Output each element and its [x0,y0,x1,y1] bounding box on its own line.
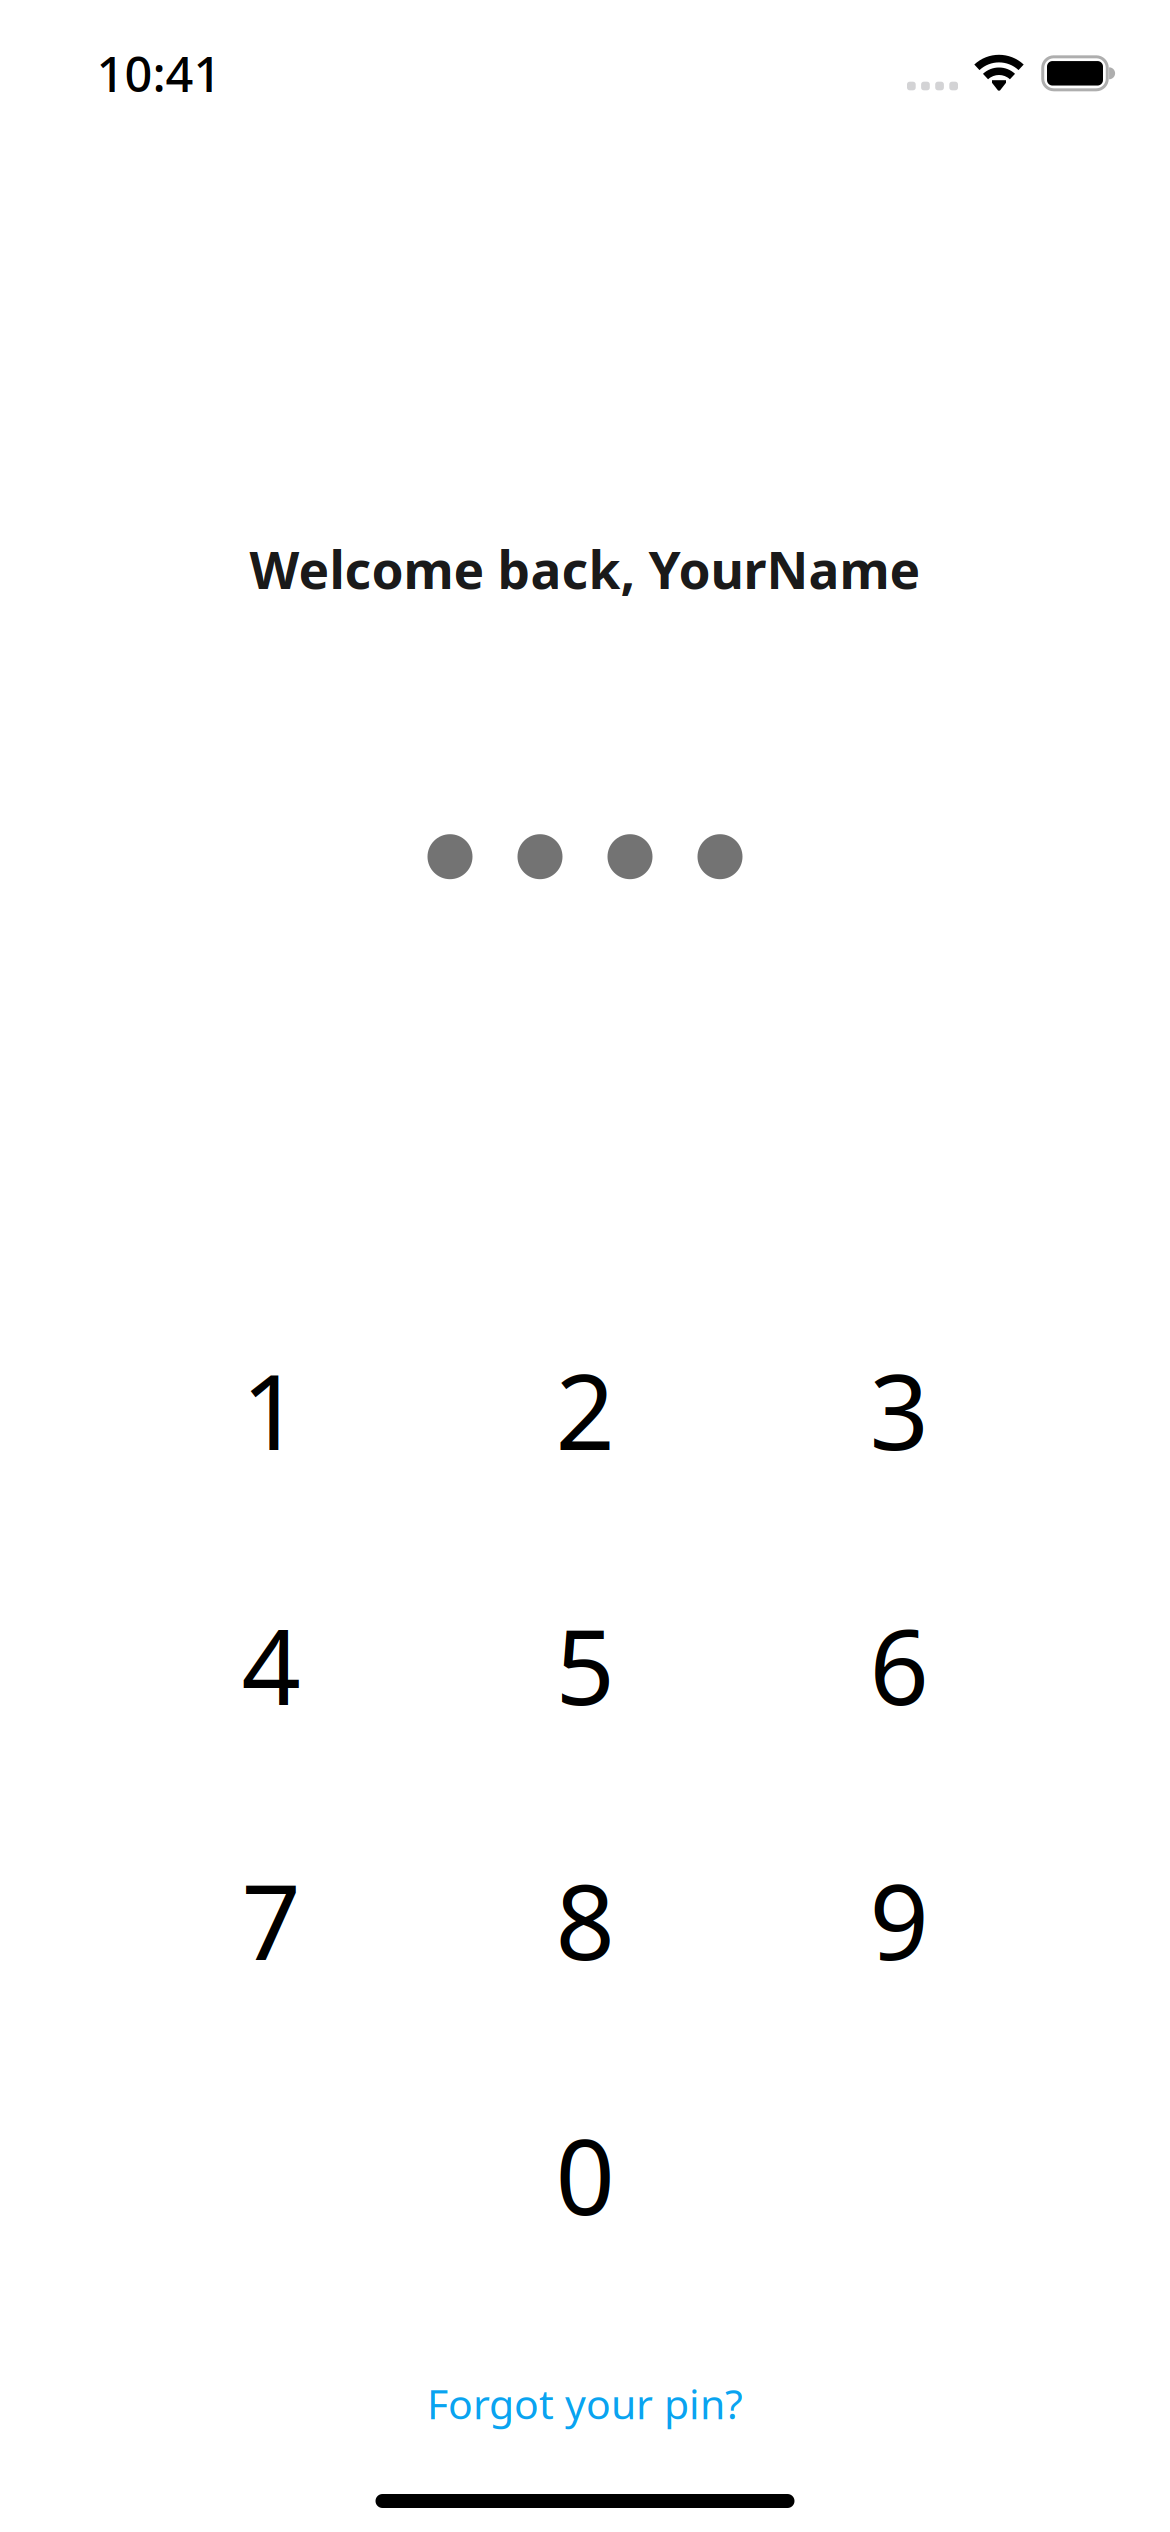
staticText: 10:41 [96,39,221,107]
button[interactable]: 9 [742,1792,1056,2047]
button[interactable]: 1 [114,1282,428,1537]
staticText: 8 [555,1847,614,1992]
staticText: 5 [555,1592,614,1737]
button[interactable]: 5 [428,1537,742,1792]
button[interactable]: 6 [742,1537,1056,1792]
staticText: 4 [241,1592,300,1737]
button[interactable]: 2 [428,1282,742,1537]
button[interactable]: 7 [114,1792,428,2047]
staticText: 9 [869,1847,928,1992]
button[interactable]: 8 [428,1792,742,2047]
button[interactable]: 3 [742,1282,1056,1537]
staticText: Welcome back, YourName [249,533,920,605]
staticText: 6 [869,1592,928,1737]
staticText: 0 [555,2102,614,2247]
staticText: 3 [869,1337,928,1482]
button[interactable]: 0 [428,2047,742,2302]
staticText: 1 [241,1337,300,1482]
staticText: Forgot your pin? [427,2375,743,2432]
staticText: 2 [555,1337,614,1482]
button[interactable]: 4 [114,1537,428,1792]
staticText: 7 [241,1847,300,1992]
button[interactable]: Forgot your pin? [387,2357,783,2450]
